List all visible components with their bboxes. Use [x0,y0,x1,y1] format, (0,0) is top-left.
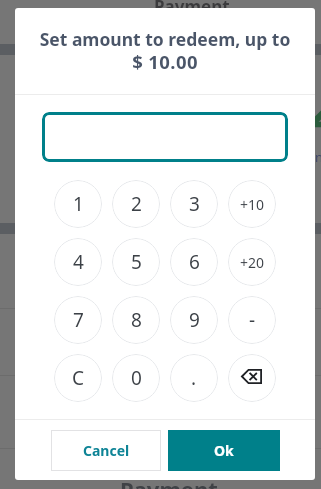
button[interactable]: 3 [170,180,218,228]
button[interactable]: 6 [170,238,218,286]
button[interactable]: 2 [112,180,160,228]
button[interactable]: Ok [168,430,280,471]
button[interactable]: 0 [112,354,160,402]
staticText: 8 [131,307,142,333]
button[interactable]: 9 [170,296,218,344]
staticText: 0 [131,365,142,391]
staticText: $ 10.00 [21,49,309,74]
staticText: Cancel [83,441,130,460]
staticText: +20 [240,253,265,272]
staticText: Ok [214,441,234,460]
staticText: 7 [73,307,84,333]
staticText: 5 [131,249,142,275]
button[interactable]: 4 [54,238,102,286]
staticText: 3 [189,191,200,217]
staticText: Set amount to redeem, up to [21,27,309,51]
button[interactable]: 7 [54,296,102,344]
button[interactable]: Cancel [51,430,161,471]
staticText: Payment [154,0,230,18]
button[interactable]: C [54,354,102,402]
staticText: 6 [189,249,200,275]
button[interactable]: Backspace [228,354,276,402]
button[interactable]: . [170,354,218,402]
button[interactable]: +20 [228,238,276,286]
button[interactable]: +10 [228,180,276,228]
button[interactable]: 5 [112,238,160,286]
staticText: . [191,365,197,391]
staticText: C [72,365,85,391]
staticText: 9 [189,307,200,333]
staticText: n [315,148,321,166]
button[interactable]: 1 [54,180,102,228]
staticText: 1 [73,191,84,217]
button[interactable]: - [228,296,276,344]
staticText: 4 [73,249,84,275]
staticText: +10 [240,195,265,214]
staticText: - [249,307,256,333]
staticText: Payment [120,474,218,489]
button[interactable] [42,112,288,162]
button[interactable]: 8 [112,296,160,344]
staticText: 2 [131,191,142,217]
